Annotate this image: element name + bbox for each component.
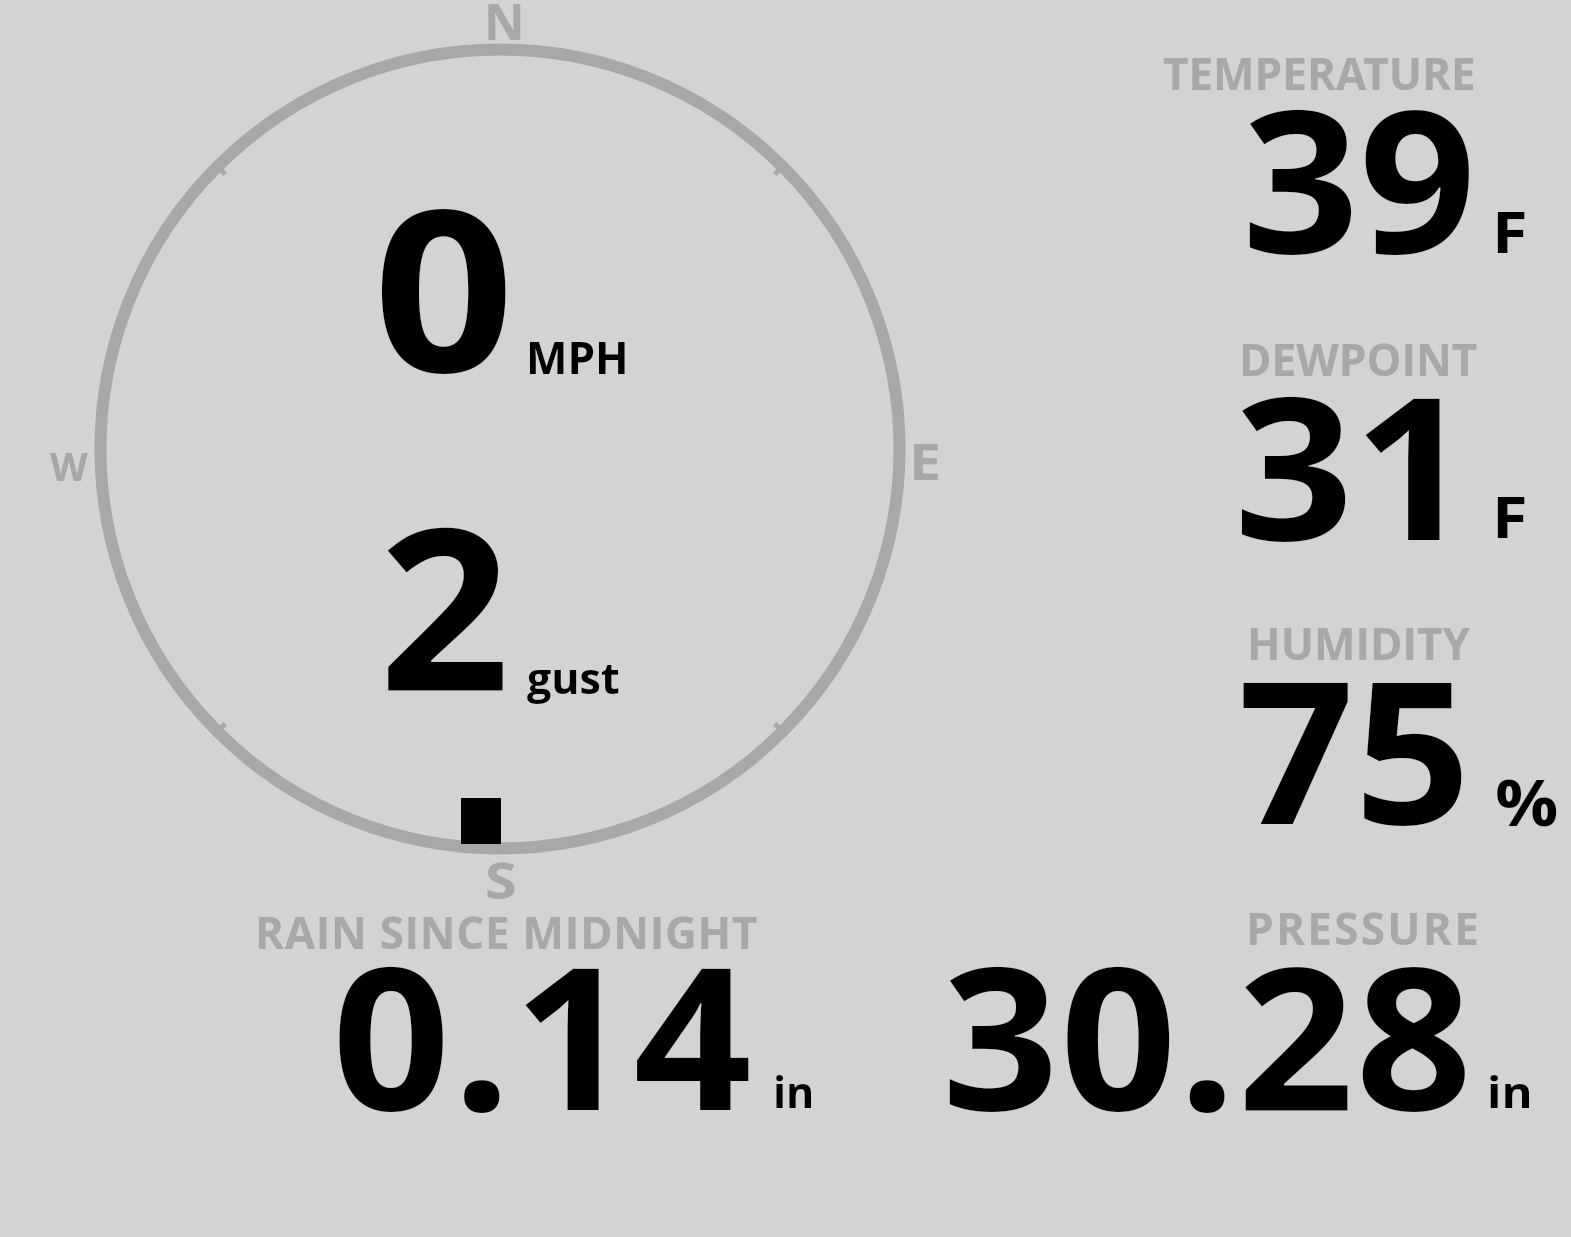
staticText: gust [527,648,620,707]
staticText: DEWPOINT [1239,329,1478,389]
staticText: RAIN SINCE MIDNIGHT [255,902,759,962]
staticText: 30.28 [942,898,1474,1168]
staticText: in [773,1062,815,1121]
staticText: F [1492,191,1528,270]
staticText: 2 [379,450,511,756]
staticText: MPH [526,327,629,387]
staticText: 0 [373,132,515,438]
staticText: E [909,427,942,495]
staticText: F [1492,476,1528,555]
staticText: W [50,439,88,492]
button[interactable]: Pressure 30.28 inches [900,890,1560,1130]
staticText: in [1487,1062,1533,1121]
button[interactable]: Temperature 39 degrees Fahrenheit [1140,30,1571,310]
staticText: TEMPERATURE [1163,43,1476,103]
staticText: 75 [1238,612,1471,882]
staticText: PRESSURE [1246,898,1482,958]
staticText: 39 [1242,41,1477,311]
staticText: 0.14 [332,898,754,1168]
staticText: N [484,0,525,55]
button[interactable]: Dewpoint 31 degrees Fahrenheit [1140,315,1571,595]
staticText: HUMIDITY [1247,613,1471,673]
button[interactable]: Humidity 75 percent [1140,600,1571,880]
staticText: % [1495,758,1559,845]
staticText: S [485,846,517,914]
staticText: 31 [1234,328,1474,598]
button[interactable]: Rain since midnight 0.14 inches [240,900,840,1130]
button[interactable]: Wind 0 miles per hour, gusting 2, from t… [60,10,940,900]
